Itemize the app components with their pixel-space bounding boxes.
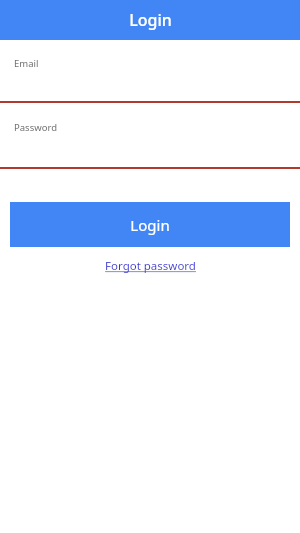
button[interactable]: Login: [10, 202, 290, 247]
button[interactable]: Password: [0, 103, 300, 167]
button[interactable]: Forgot password: [105, 258, 196, 274]
staticText: Forgot password: [105, 258, 196, 274]
staticText: Login: [130, 215, 170, 235]
staticText: Login: [129, 9, 172, 31]
staticText: Email: [14, 57, 39, 70]
staticText: Password: [14, 121, 57, 134]
button[interactable]: Email: [0, 40, 300, 101]
